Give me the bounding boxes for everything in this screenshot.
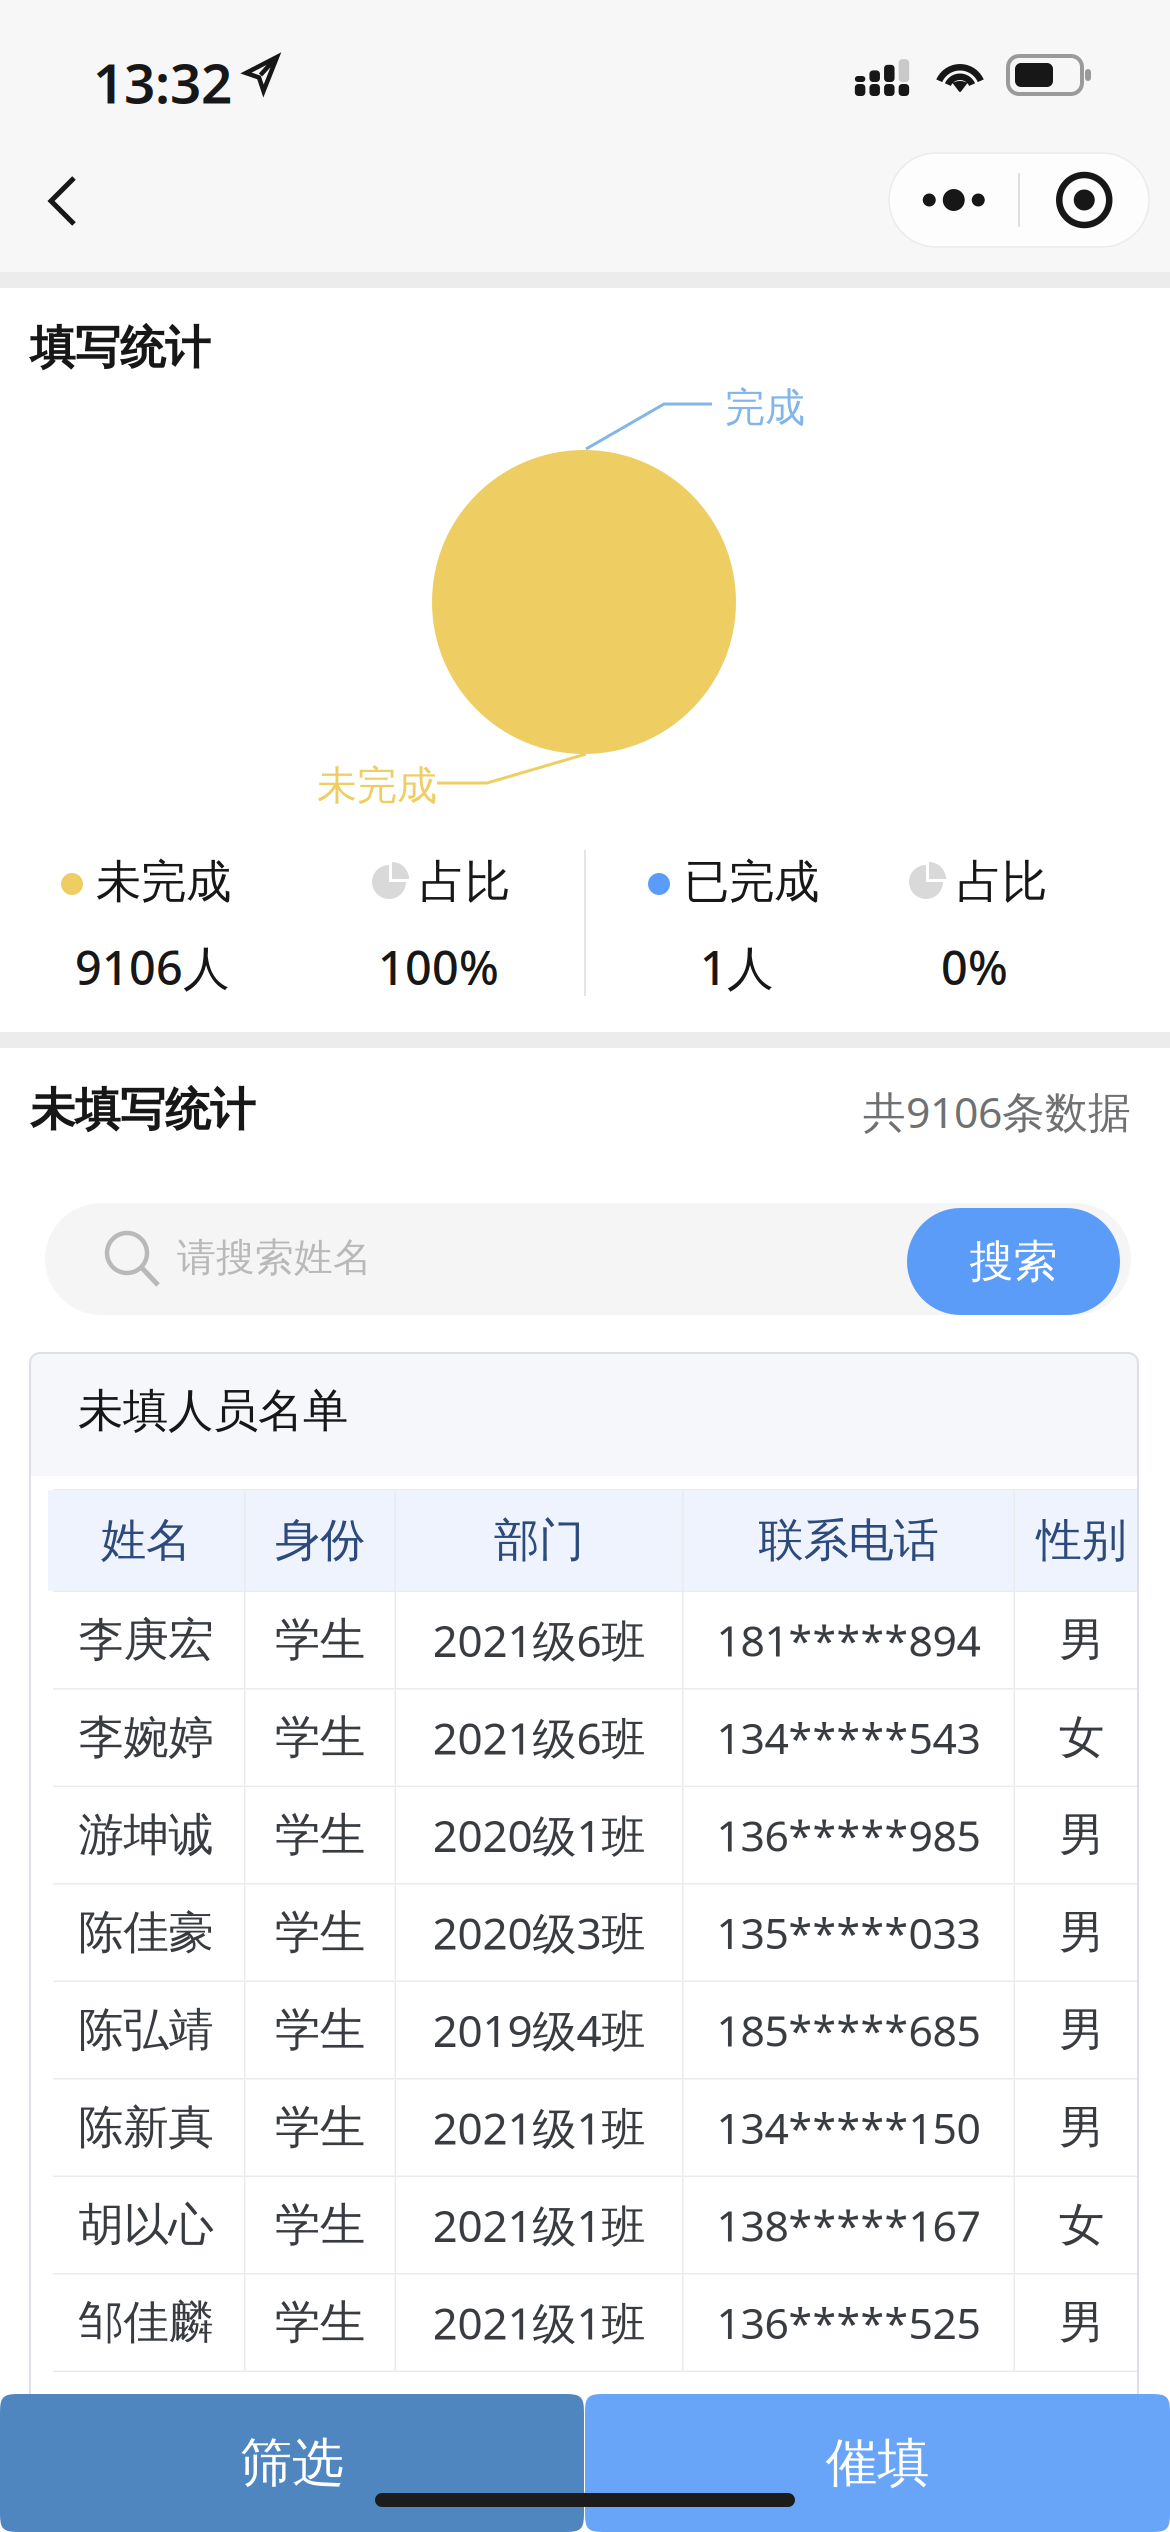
- button[interactable]: Back: [8, 151, 112, 255]
- staticText: 2021级1班: [432, 2293, 645, 2352]
- staticText: 185*****685: [716, 2002, 980, 2058]
- staticText: 2020级1班: [432, 1806, 645, 1864]
- staticText: 男: [1059, 1612, 1104, 1668]
- staticText: 134*****543: [716, 1709, 980, 1766]
- staticText: 学生: [275, 2100, 365, 2155]
- staticText: 李庚宏: [78, 1612, 213, 1668]
- staticText: 男: [1059, 1807, 1104, 1863]
- button[interactable]: 催填: [585, 2394, 1170, 2532]
- staticText: 1人: [700, 936, 774, 998]
- staticText: 13:32: [93, 46, 232, 119]
- staticText: 135*****033: [716, 1904, 980, 1961]
- staticText: 0%: [941, 936, 1008, 998]
- staticText: 陈弘靖: [78, 2002, 213, 2058]
- staticText: 2021级1班: [432, 2196, 645, 2254]
- staticText: 女: [1059, 2197, 1104, 2253]
- staticText: 学生: [275, 2295, 365, 2350]
- button[interactable]: More: [889, 153, 1018, 247]
- staticText: 136*****985: [716, 1807, 980, 1863]
- staticText: 学生: [275, 2197, 365, 2253]
- staticText: 邹佳麟: [78, 2295, 213, 2350]
- staticText: 未完成: [96, 854, 231, 910]
- staticText: 女: [1059, 1710, 1104, 1765]
- staticText: 胡以心: [78, 2197, 213, 2253]
- staticText: 181*****894: [716, 1612, 980, 1668]
- staticText: 学生: [275, 1807, 365, 1863]
- staticText: 未填人员名单: [78, 1383, 348, 1439]
- staticText: 学生: [275, 2002, 365, 2058]
- staticText: 未完成: [317, 761, 437, 810]
- staticText: 学生: [275, 1710, 365, 1765]
- staticText: 李婉婷: [78, 1710, 213, 1765]
- button[interactable]: 筛选: [0, 2394, 584, 2532]
- staticText: 游坤诚: [78, 1807, 213, 1863]
- staticText: 填写统计: [30, 320, 210, 376]
- staticText: 身份: [275, 1513, 365, 1568]
- staticText: 请搜索姓名: [177, 1234, 372, 1281]
- staticText: 联系电话: [758, 1513, 938, 1568]
- staticText: 2021级6班: [432, 1611, 645, 1669]
- staticText: 2021级6班: [432, 1708, 645, 1767]
- staticText: 138*****167: [716, 2197, 980, 2253]
- staticText: 搜索: [969, 1234, 1057, 1288]
- button[interactable]: 搜索: [907, 1208, 1120, 1315]
- staticText: 2020级3班: [432, 1903, 645, 1962]
- staticText: 完成: [725, 383, 805, 432]
- staticText: 男: [1059, 2002, 1104, 2058]
- button[interactable]: Close mini program: [1020, 153, 1149, 247]
- staticText: 共9106条数据: [863, 1083, 1131, 1140]
- staticText: 陈新真: [78, 2100, 213, 2155]
- staticText: 134*****150: [716, 2099, 980, 2156]
- staticText: 未填写统计: [30, 1082, 255, 1138]
- staticText: 占比: [957, 854, 1047, 910]
- staticText: 2021级1班: [432, 2098, 645, 2157]
- staticText: 占比: [420, 854, 510, 910]
- staticText: 部门: [494, 1513, 584, 1568]
- staticText: 100%: [378, 936, 499, 998]
- staticText: 2019级4班: [432, 2001, 645, 2059]
- staticText: 男: [1059, 1905, 1104, 1960]
- staticText: 9106人: [75, 936, 230, 998]
- staticText: 已完成: [684, 854, 819, 910]
- staticText: 学生: [275, 1612, 365, 1668]
- staticText: 学生: [275, 1905, 365, 1960]
- staticText: 男: [1059, 2295, 1104, 2350]
- staticText: 姓名: [101, 1513, 191, 1568]
- staticText: 男: [1059, 2100, 1104, 2155]
- staticText: 筛选: [240, 2431, 344, 2495]
- staticText: 陈佳豪: [78, 1905, 213, 1960]
- staticText: 催填: [825, 2431, 929, 2495]
- staticText: 性别: [1036, 1513, 1126, 1568]
- staticText: 136*****525: [716, 2294, 980, 2351]
